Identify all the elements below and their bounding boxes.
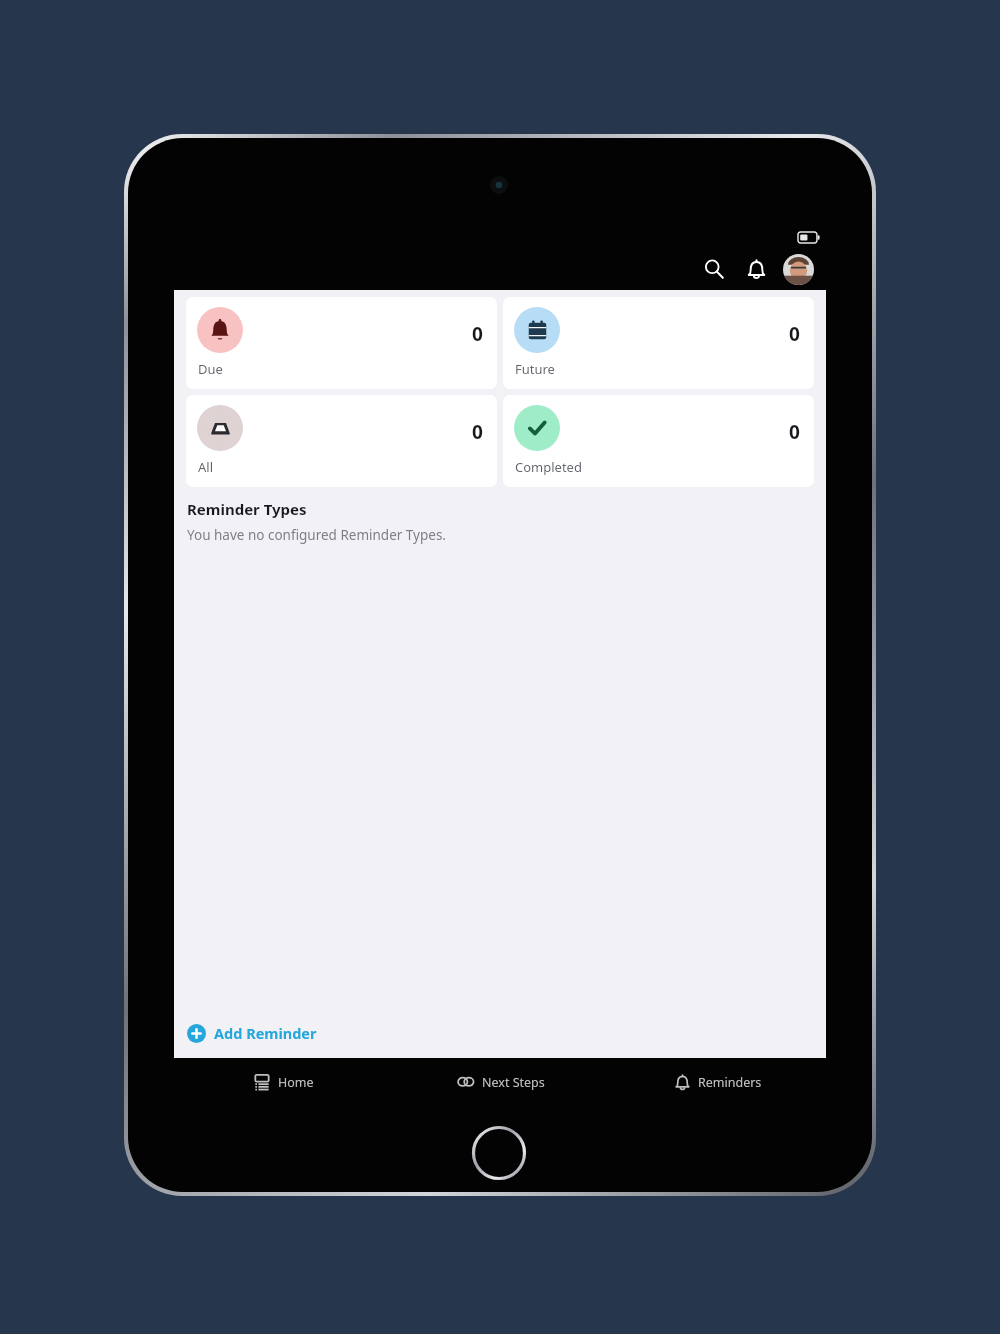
button[interactable]: All — [186, 395, 497, 487]
button[interactable]: Future — [503, 297, 814, 389]
staticText: 0 — [789, 419, 800, 445]
staticText: Reminders — [698, 1074, 762, 1091]
staticText: You have no configured Reminder Types. — [187, 526, 446, 544]
button[interactable]: Profile — [778, 249, 818, 289]
staticText: Home — [278, 1074, 314, 1091]
button[interactable]: Notifications — [736, 249, 776, 289]
staticText: Add Reminder — [214, 1023, 317, 1043]
button[interactable]: Next Steps — [392, 1060, 609, 1104]
staticText: Next Steps — [482, 1074, 545, 1091]
button[interactable]: Due — [186, 297, 497, 389]
button[interactable]: Add Reminder — [174, 1010, 826, 1056]
button[interactable]: Home — [174, 1060, 392, 1104]
staticText: 0 — [472, 321, 483, 347]
staticText: Due — [198, 360, 223, 378]
staticText: Reminder Types — [187, 499, 307, 519]
staticText: 0 — [472, 419, 483, 445]
staticText: 0 — [789, 321, 800, 347]
button[interactable]: Completed — [503, 395, 814, 487]
staticText: Completed — [515, 458, 582, 476]
button[interactable]: Search — [694, 249, 734, 289]
button[interactable]: Reminders — [609, 1060, 826, 1104]
staticText: Future — [515, 360, 555, 378]
staticText: All — [198, 458, 214, 476]
